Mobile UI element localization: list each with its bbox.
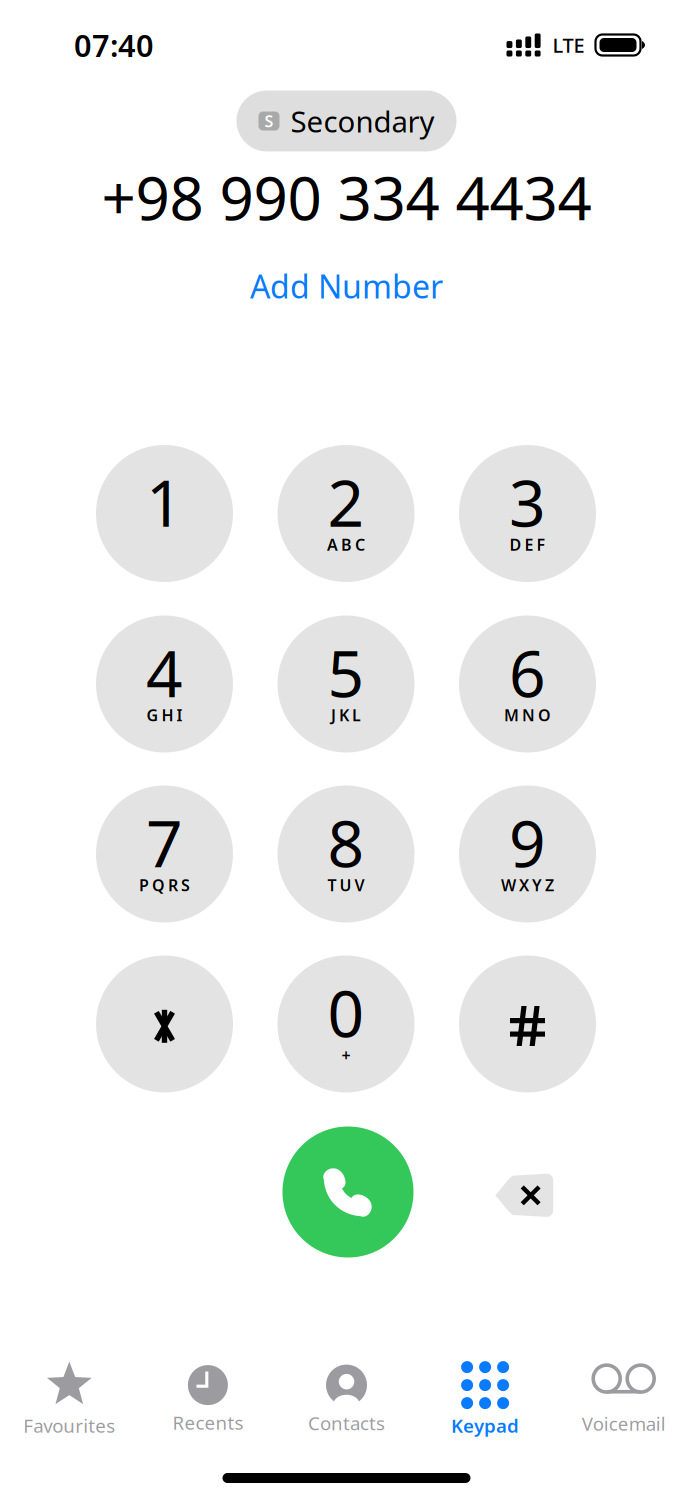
staticText: 9 [509,800,546,885]
button[interactable]: S [236,90,456,151]
button[interactable]: 3 [459,445,596,582]
button[interactable]: 8 [277,785,414,922]
staticText: LTE [552,32,584,58]
button[interactable]: 5 [277,615,414,752]
button[interactable]: 1 [96,445,233,582]
button[interactable]: 6 [459,615,596,752]
staticText: Recents [172,1410,243,1435]
staticText: Keypad [451,1413,519,1438]
button[interactable]: Delete [481,1160,567,1231]
staticText: 2 [327,459,364,544]
staticText: A B C [327,534,365,555]
staticText: + [341,1044,350,1066]
button[interactable]: 0 [277,955,414,1092]
staticText: G H I [146,704,182,726]
button[interactable]: Add Number [230,255,463,317]
button[interactable]: Contacts [277,1361,416,1439]
button[interactable]: Pound [459,955,596,1092]
staticText: D E F [509,534,545,555]
staticText: 4 [146,630,183,715]
staticText: M N O [504,704,551,726]
button[interactable]: 9 [459,785,596,922]
staticText: T U V [327,874,364,896]
button[interactable]: Voicemail [554,1360,693,1440]
button[interactable]: Keypad [416,1358,554,1442]
button[interactable]: 4 [96,615,233,752]
staticText: 1 [146,459,183,544]
staticText: 6 [509,630,546,715]
staticText: Secondary [290,101,434,140]
staticText: W X Y Z [501,874,554,896]
staticText: J K L [331,704,361,726]
staticText: P Q R S [139,874,190,896]
staticText: 7 [146,800,183,885]
button[interactable]: 2 [277,445,414,582]
button[interactable]: Recents [139,1361,277,1439]
button[interactable]: 7 [96,785,233,922]
staticText: 8 [327,800,364,885]
staticText: S [264,110,273,132]
button[interactable]: Favourites [0,1358,139,1442]
staticText: +98 990 334 4434 [101,157,591,237]
staticText: 5 [327,630,364,715]
staticText: Voicemail [582,1411,666,1436]
staticText: 3 [509,459,546,544]
staticText: 07:40 [74,25,154,65]
staticText: Favourites [23,1413,115,1438]
staticText: 0 [327,970,364,1055]
button[interactable]: Star [96,955,233,1092]
staticText: Contacts [308,1411,385,1435]
button[interactable]: Call [282,1126,413,1257]
staticText: Add Number [250,265,443,307]
